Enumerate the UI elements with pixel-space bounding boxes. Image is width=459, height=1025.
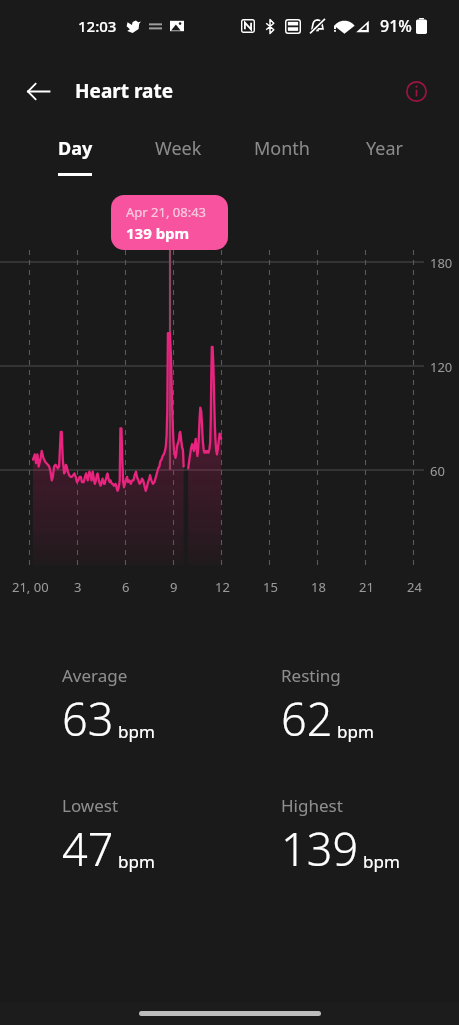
staticText: 15 xyxy=(263,578,278,596)
staticText: bpm xyxy=(118,720,155,743)
staticText: bpm xyxy=(363,850,400,873)
staticText: 47 xyxy=(62,818,114,879)
staticText: Month xyxy=(254,136,310,161)
staticText: 18 xyxy=(311,578,326,596)
button[interactable]: Apr 21, 08:43 xyxy=(111,195,228,250)
staticText: 21 xyxy=(359,578,374,596)
button[interactable]: Month xyxy=(230,131,333,189)
staticText: 3 xyxy=(74,578,82,596)
button[interactable]: Back xyxy=(16,69,60,113)
staticText: Year xyxy=(366,136,403,161)
button[interactable]: Year xyxy=(333,131,436,189)
button[interactable]: Week xyxy=(127,131,230,189)
staticText: Lowest xyxy=(62,794,119,817)
button[interactable]: Resting xyxy=(281,664,374,749)
staticText: 21, 00 xyxy=(12,578,49,596)
staticText: Day xyxy=(58,136,93,161)
staticText: 12 xyxy=(215,578,230,596)
staticText: Heart rate xyxy=(75,78,174,104)
button[interactable]: Information xyxy=(396,71,436,111)
staticText: 139 xyxy=(281,818,359,879)
staticText: 12:03 xyxy=(78,16,117,36)
staticText: 24 xyxy=(407,578,422,596)
staticText: Apr 21, 08:43 xyxy=(126,203,207,221)
staticText: 63 xyxy=(62,688,114,749)
staticText: Week xyxy=(155,136,202,161)
staticText: 9 xyxy=(170,578,178,596)
staticText: 180 xyxy=(430,254,453,272)
staticText: bpm xyxy=(337,720,374,743)
staticText: 60 xyxy=(430,462,445,480)
staticText: bpm xyxy=(118,850,155,873)
button[interactable]: Average xyxy=(62,664,155,749)
staticText: 139 bpm xyxy=(126,223,190,243)
staticText: Highest xyxy=(281,794,343,817)
staticText: Average xyxy=(62,664,128,687)
staticText: Resting xyxy=(281,664,341,687)
staticText: 120 xyxy=(430,358,453,376)
staticText: 62 xyxy=(281,688,333,749)
button[interactable]: Lowest xyxy=(62,794,155,879)
button[interactable]: Highest xyxy=(281,794,400,879)
button[interactable]: Day xyxy=(23,131,127,189)
staticText: 6 xyxy=(122,578,130,596)
staticText: 91% xyxy=(380,15,412,37)
